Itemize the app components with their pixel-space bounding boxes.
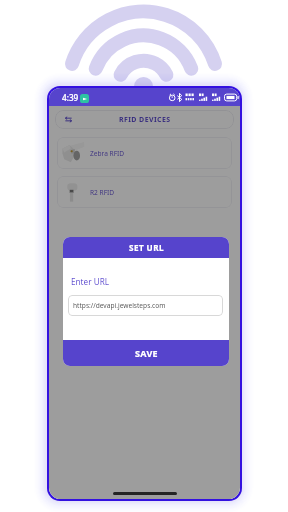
staticText: RFID DEVICES [119, 115, 171, 125]
staticText: SAVE [135, 347, 158, 359]
staticText: R2 RFID [90, 188, 115, 197]
button[interactable]: R2 RFID [57, 176, 232, 208]
button[interactable]: SAVE [63, 340, 229, 366]
button[interactable]: RFID DEVICES [55, 110, 234, 129]
staticText: https://devapi.jewelsteps.com [73, 301, 166, 310]
staticText: Enter URL [71, 276, 110, 287]
button[interactable]: Zebra RFID [57, 137, 232, 169]
staticText: Zebra RFID [90, 149, 125, 158]
button[interactable]: https://devapi.jewelsteps.com [73, 295, 218, 316]
other: Swap devices [64, 115, 73, 124]
staticText: SET URL [129, 242, 164, 253]
staticText: 4:39 [62, 92, 79, 103]
